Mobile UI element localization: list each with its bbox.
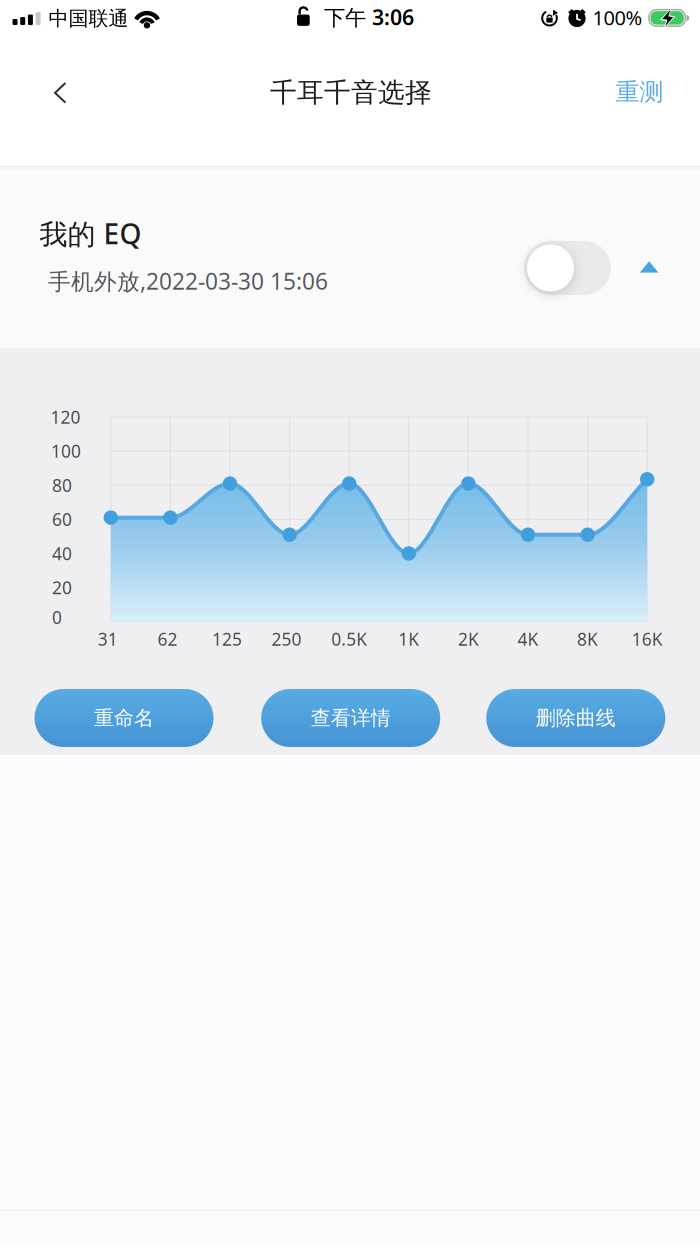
staticText: 4K xyxy=(517,627,538,650)
staticText: 20 xyxy=(52,576,72,599)
button[interactable]: 重测 xyxy=(599,67,679,117)
button[interactable]: 删除曲线 xyxy=(486,689,665,747)
staticText: 100% xyxy=(592,4,642,31)
staticText: 中国联通 xyxy=(48,6,128,31)
button[interactable]: EQ开关 xyxy=(524,241,611,295)
staticText: 查看详情 xyxy=(311,706,391,730)
staticText: 0 xyxy=(52,606,62,629)
staticText: 2K xyxy=(458,627,479,650)
button[interactable]: 返回 xyxy=(40,70,80,116)
staticText: 120 xyxy=(50,405,80,428)
staticText: 31 xyxy=(98,627,118,650)
staticText: 1K xyxy=(398,627,419,650)
staticText: 8K xyxy=(577,627,598,650)
button[interactable]: 查看详情 xyxy=(261,689,440,747)
staticText: 100 xyxy=(51,440,81,463)
staticText: 40 xyxy=(52,542,72,565)
staticText: 千耳千音选择 xyxy=(270,76,432,109)
button[interactable]: 重命名 xyxy=(34,689,213,747)
staticText: 62 xyxy=(157,627,177,650)
staticText: 重命名 xyxy=(94,706,154,730)
button[interactable]: 收起 xyxy=(640,261,659,273)
staticText: 16K xyxy=(632,627,663,650)
staticText: 0.5K xyxy=(331,627,367,650)
staticText: 250 xyxy=(272,627,302,650)
staticText: 下午 3:06 xyxy=(324,3,414,31)
staticText: 手机外放,2022-03-30 15:06 xyxy=(48,266,328,296)
staticText: 重测 xyxy=(615,77,663,107)
staticText: 60 xyxy=(52,508,72,531)
staticText: 80 xyxy=(52,474,72,497)
staticText: 125 xyxy=(212,627,242,650)
staticText: 我的 EQ xyxy=(39,215,141,252)
staticText: 删除曲线 xyxy=(536,706,616,730)
